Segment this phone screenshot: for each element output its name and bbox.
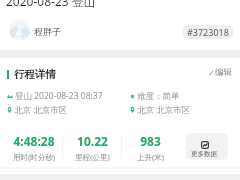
other: 编辑 [209, 70, 214, 75]
staticText: 程胖子 [34, 26, 61, 37]
staticText: 2020-08-23 登山 [6, 0, 96, 9]
staticText: 上升(米) [137, 152, 164, 162]
staticText: 编辑 [215, 67, 232, 78]
staticText: 北京 北京市区 [137, 104, 191, 116]
staticText: 10.22 [77, 133, 108, 149]
staticText: 北京 北京市区 [14, 104, 68, 116]
staticText: 4:48:28 [13, 133, 55, 149]
button[interactable]: 程胖子 [0, 16, 240, 44]
staticText: 行程详情 [14, 68, 56, 81]
button[interactable]: 更多数据 [186, 133, 228, 160]
staticText: 更多数据 [191, 150, 217, 158]
other: 更多数据 [201, 141, 209, 149]
staticText: 983 [140, 133, 161, 149]
staticText: 难度：简单 [137, 91, 180, 102]
button[interactable]: #3723018 [182, 25, 234, 39]
staticText: #3723018 [187, 26, 229, 38]
staticText: 用时(时分秒) [13, 152, 55, 162]
staticText: 里程(公里) [75, 152, 110, 162]
staticText: 登山 2020-08-23 08:37 [15, 90, 103, 102]
button[interactable]: 编辑 [203, 64, 238, 81]
